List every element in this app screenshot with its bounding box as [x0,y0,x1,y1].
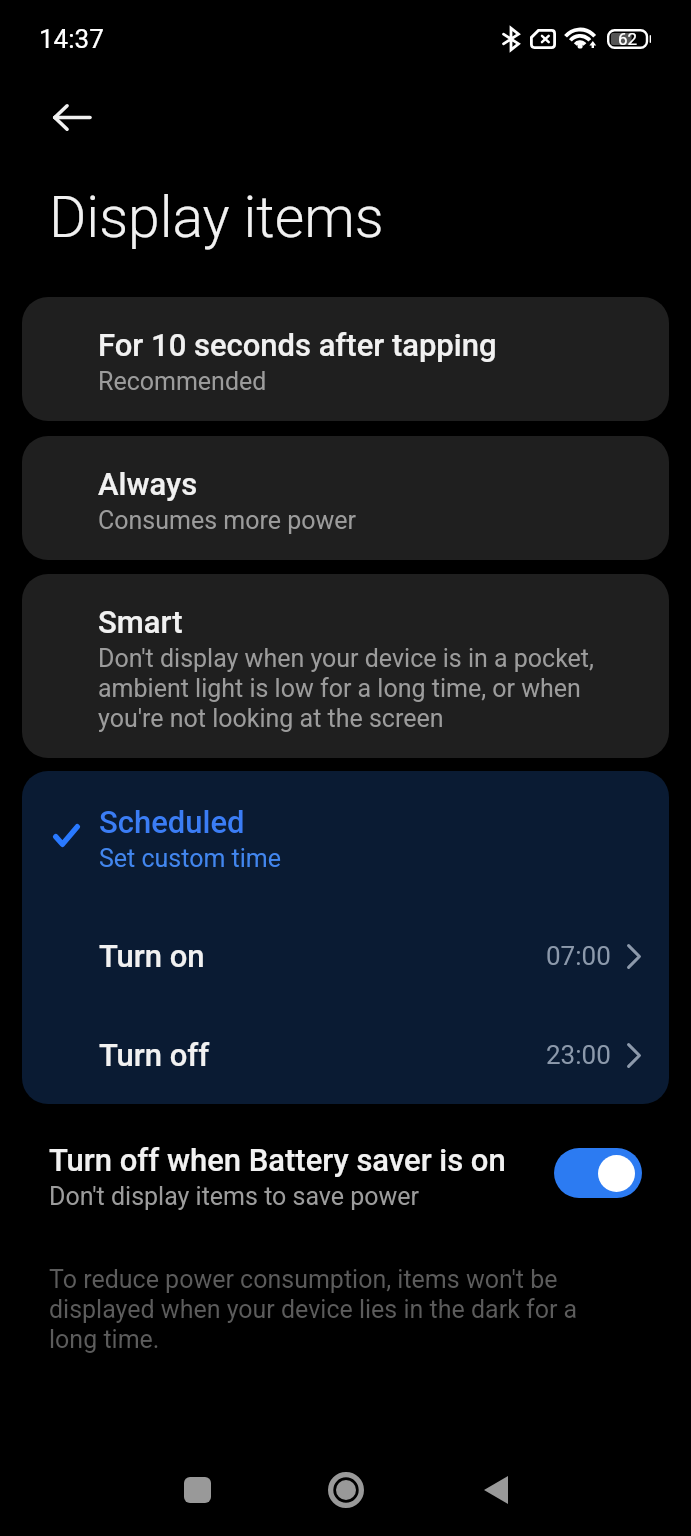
button[interactable]: Turn off when Battery saver is on [554,1148,642,1198]
button[interactable]: Turn off [22,1006,669,1104]
staticText: For 10 seconds after tapping [98,327,497,363]
button[interactable]: Back [460,1455,530,1525]
staticText: 07:00 [546,941,611,971]
staticText: 23:00 [546,1040,611,1070]
button[interactable]: Smart [22,574,669,758]
staticText: Consumes more power [98,506,356,535]
button[interactable]: Turn off when Battery saver is on [0,1142,691,1211]
staticText: Smart [98,604,183,640]
staticText: To reduce power consumption, items won't… [49,1265,613,1354]
staticText: Set custom time [99,844,282,873]
button[interactable]: Scheduled [22,771,669,906]
staticText: Turn off [99,1037,210,1073]
staticText: Don't display items to save power [49,1182,420,1211]
staticText: 14:37 [39,24,104,54]
button[interactable]: Back [41,86,103,148]
staticText: Recommended [98,367,267,396]
button[interactable]: For 10 seconds after tapping [22,297,669,421]
staticText: Turn off when Battery saver is on [49,1142,506,1178]
staticText: 62 [618,29,638,49]
button[interactable]: Recents [162,1455,232,1525]
staticText: Always [98,466,198,502]
button[interactable]: Turn on [22,906,669,1006]
staticText: Display items [49,184,384,251]
staticText: Turn on [99,938,205,974]
staticText: Scheduled [99,804,245,840]
button[interactable]: Always [22,436,669,560]
button[interactable]: Home [311,1455,381,1525]
staticText: Don't display when your device is in a p… [98,644,643,733]
